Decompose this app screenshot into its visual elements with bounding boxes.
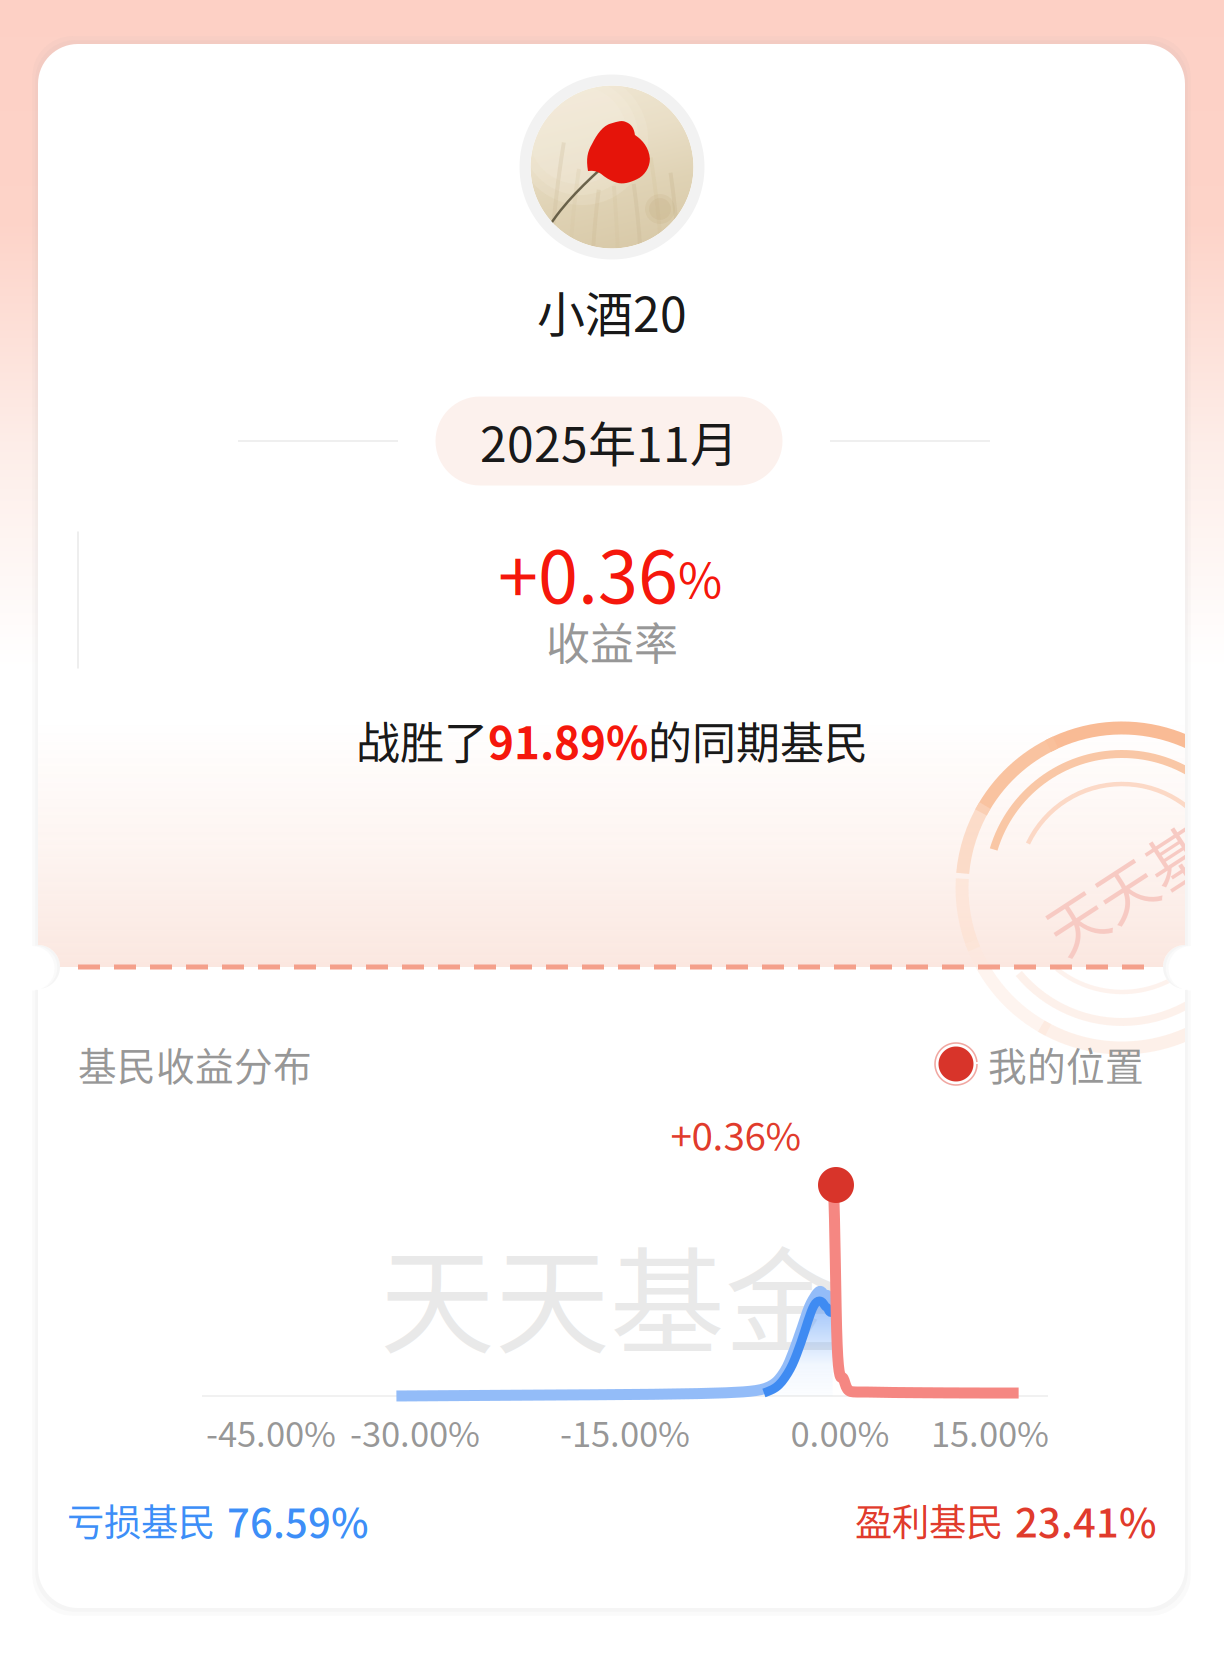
staticText: 天天基金 [380,1211,840,1377]
staticText: 23.41% [1015,1491,1157,1549]
staticText: -45.00% [206,1407,336,1457]
staticText: 0.00% [790,1407,889,1457]
staticText: 盈利基民 [855,1493,1003,1547]
staticText: 2025年11月 [480,406,738,476]
staticText: +0.36 [498,520,678,624]
staticText: 收益率 [546,609,678,673]
staticText: -30.00% [350,1407,480,1457]
staticText: -15.00% [560,1407,690,1457]
staticText: 15.00% [931,1407,1049,1457]
staticText: % [678,542,722,612]
staticText: 91.89% [488,708,648,772]
staticText: 基民收益分布 [78,1036,312,1092]
staticText: 我的位置 [988,1036,1144,1092]
staticText: 小酒20 [537,276,687,346]
staticText: 亏损基民 [67,1493,215,1547]
staticText: 战胜了 [356,708,488,772]
staticText: 天天基金 [1032,829,1224,914]
staticText: +0.36% [670,1106,801,1162]
staticText: 的同期基民 [648,708,868,772]
staticText: 76.59% [227,1491,369,1549]
